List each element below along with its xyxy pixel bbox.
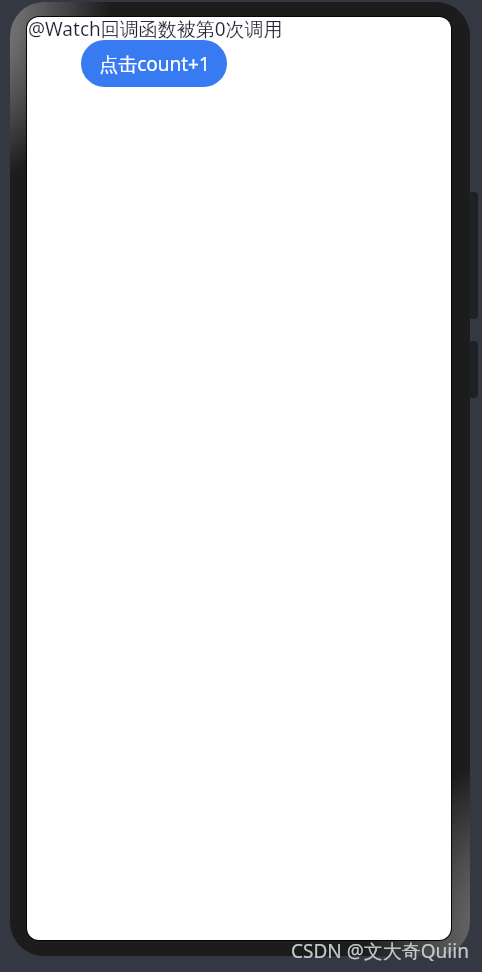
button[interactable]: 点击count+1 (81, 40, 227, 87)
staticText: 点击count+1 (99, 51, 210, 77)
staticText: @Watch回调函数被第0次调用 (28, 17, 283, 42)
staticText: CSDN @文大奇Quiin (291, 938, 469, 964)
